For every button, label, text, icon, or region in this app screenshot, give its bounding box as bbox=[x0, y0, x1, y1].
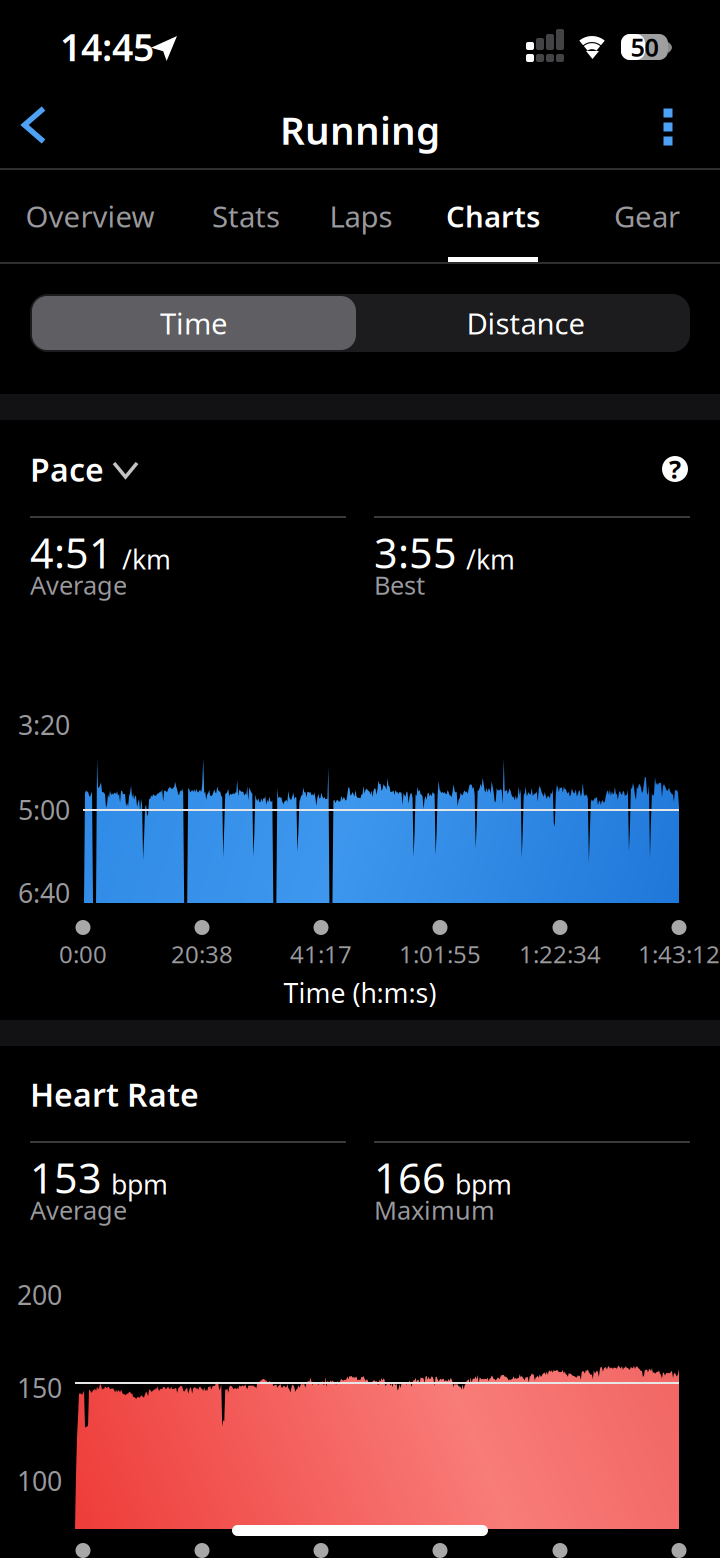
staticText: Time bbox=[160, 303, 228, 342]
staticText: 3:20 bbox=[18, 707, 70, 742]
button[interactable]: Charts bbox=[428, 170, 558, 262]
staticText: bpm bbox=[455, 1166, 512, 1202]
staticText: 14:45 bbox=[60, 22, 154, 72]
staticText: Distance bbox=[466, 303, 585, 342]
staticText: Time (h:m:s) bbox=[283, 975, 436, 1010]
staticText: Pace bbox=[30, 448, 104, 490]
button[interactable]: Distance bbox=[364, 296, 688, 350]
staticText: Heart Rate bbox=[30, 1073, 199, 1115]
staticText: 5:00 bbox=[18, 792, 70, 827]
staticText: Average bbox=[30, 1193, 127, 1227]
staticText: 50 bbox=[630, 30, 658, 64]
staticText: /km bbox=[466, 541, 515, 577]
staticText: 1:43:12 bbox=[638, 938, 720, 970]
staticText: Charts bbox=[446, 196, 540, 235]
button[interactable]: More options bbox=[626, 86, 710, 168]
staticText: 6:40 bbox=[18, 875, 70, 910]
button[interactable]: Laps bbox=[309, 170, 413, 262]
staticText: Stats bbox=[212, 196, 280, 235]
staticText: 0:00 bbox=[59, 938, 107, 970]
button[interactable]: Back bbox=[0, 84, 76, 166]
staticText: 100 bbox=[17, 1463, 62, 1498]
staticText: 166 bbox=[374, 1150, 446, 1205]
staticText: 150 bbox=[17, 1370, 62, 1405]
staticText: Maximum bbox=[374, 1193, 495, 1227]
staticText: Laps bbox=[329, 196, 392, 235]
staticText: 1:22:34 bbox=[519, 938, 601, 970]
staticText: Average bbox=[30, 568, 127, 602]
staticText: 20:38 bbox=[171, 938, 233, 970]
button[interactable]: Overview bbox=[0, 170, 181, 262]
button[interactable]: Gear bbox=[574, 170, 720, 262]
button[interactable]: Stats bbox=[183, 170, 309, 262]
staticText: 200 bbox=[17, 1277, 62, 1312]
button[interactable]: Time bbox=[32, 296, 356, 350]
staticText: bpm bbox=[111, 1166, 168, 1202]
button[interactable]: Help bbox=[653, 447, 697, 491]
staticText: Best bbox=[374, 568, 425, 602]
staticText: 153 bbox=[30, 1150, 102, 1205]
staticText: 41:17 bbox=[290, 938, 352, 970]
staticText: 1:01:55 bbox=[399, 938, 481, 970]
staticText: /km bbox=[122, 541, 171, 577]
staticText: 4:51 bbox=[30, 525, 113, 580]
staticText: 3:55 bbox=[374, 525, 457, 580]
staticText: Running bbox=[280, 104, 440, 155]
staticText: Gear bbox=[614, 196, 680, 235]
staticText: Overview bbox=[25, 196, 154, 235]
staticText: ? bbox=[669, 452, 681, 486]
